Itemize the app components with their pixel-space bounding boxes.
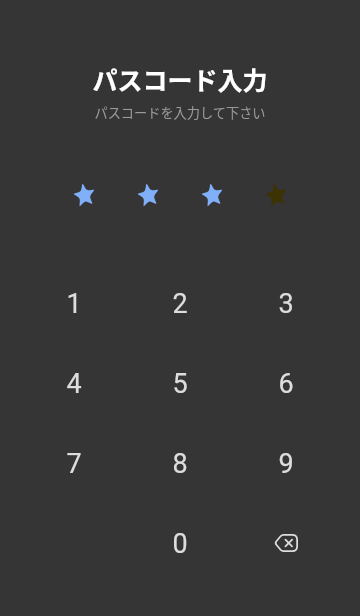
button[interactable]: Backspace (233, 504, 339, 584)
button[interactable]: 6 (233, 344, 339, 424)
button[interactable]: 7 (21, 424, 127, 504)
staticText: 3 (278, 288, 294, 320)
staticText: 7 (66, 448, 82, 480)
staticText: 0 (172, 528, 188, 560)
button[interactable]: 5 (127, 344, 233, 424)
button[interactable]: 9 (233, 424, 339, 504)
staticText: 1 (66, 288, 82, 320)
button[interactable]: 3 (233, 264, 339, 344)
button[interactable]: 2 (127, 264, 233, 344)
button[interactable]: 8 (127, 424, 233, 504)
staticText: パスコード入力 (92, 61, 268, 97)
button[interactable]: 0 (127, 504, 233, 584)
button[interactable]: 1 (21, 264, 127, 344)
button[interactable]: 4 (21, 344, 127, 424)
staticText: 2 (172, 288, 188, 320)
staticText: 8 (172, 448, 188, 480)
staticText: 6 (278, 368, 294, 400)
staticText: 5 (172, 368, 188, 400)
staticText: 9 (278, 448, 294, 480)
staticText: パスコードを入力して下さい (94, 103, 266, 122)
staticText: 4 (66, 368, 82, 400)
